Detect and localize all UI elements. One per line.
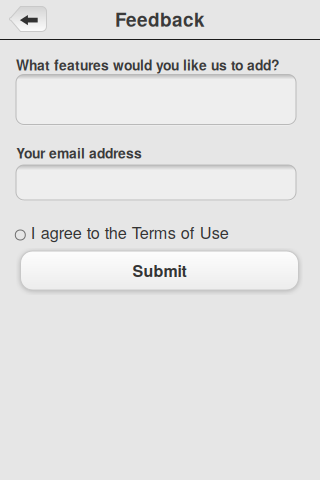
button[interactable]: Back bbox=[9, 6, 46, 31]
button[interactable]: Submit bbox=[20, 251, 298, 290]
button[interactable]: I agree to the Terms of Use bbox=[15, 222, 229, 242]
staticText: I agree to the Terms of Use bbox=[31, 220, 229, 244]
staticText: What features would you like us to add? bbox=[16, 55, 279, 75]
staticText: Feedback bbox=[115, 5, 205, 32]
staticText: Submit bbox=[132, 259, 186, 282]
staticText: Your email address bbox=[16, 143, 142, 163]
